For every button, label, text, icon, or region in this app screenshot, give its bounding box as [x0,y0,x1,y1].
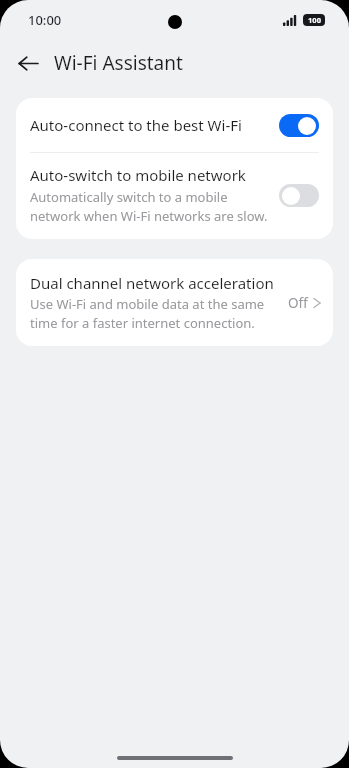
button[interactable]: Auto-switch to mobile network [16,153,333,239]
staticText: Dual channel network acceleration [30,273,274,293]
button[interactable]: Back [8,43,48,83]
button[interactable]: Dual channel network acceleration [16,259,333,346]
staticText: Auto-connect to the best Wi-Fi [30,115,279,135]
staticText: Use Wi-Fi and mobile data at the same ti… [30,295,280,332]
staticText: 100 [308,15,321,25]
button[interactable]: Toggle off [279,184,319,207]
button[interactable]: Auto-connect to the best Wi-Fi [16,98,333,152]
staticText: 10:00 [28,11,62,29]
staticText: Automatically switch to a mobile network… [30,188,269,225]
staticText: Off [288,294,308,312]
staticText: Auto-switch to mobile network [30,165,246,185]
staticText: Wi-Fi Assistant [54,50,183,76]
button[interactable]: Toggle on [279,114,319,137]
